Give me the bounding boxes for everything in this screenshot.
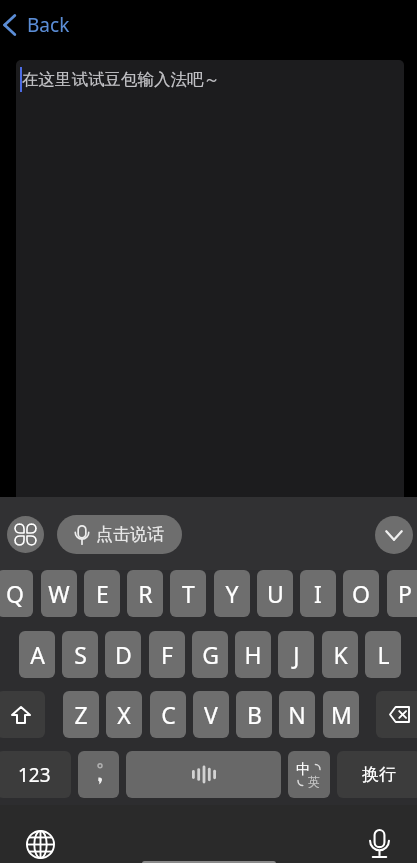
button[interactable]: P <box>387 570 417 617</box>
staticText: O <box>352 578 370 609</box>
button[interactable]: F <box>149 631 185 678</box>
button[interactable]: 在这里试试豆包输入法吧～ <box>16 60 404 497</box>
button[interactable]: G <box>192 631 228 678</box>
button[interactable]: I <box>300 570 336 617</box>
staticText: P <box>398 578 412 609</box>
button[interactable]: H <box>235 631 271 678</box>
button[interactable]: Y <box>214 570 250 617</box>
staticText: T <box>182 578 195 609</box>
button[interactable]: J <box>278 631 314 678</box>
staticText: A <box>30 639 45 670</box>
button[interactable]: 点击说话 <box>57 515 182 554</box>
button[interactable]: Comma <box>78 751 119 798</box>
staticText: C <box>161 699 176 730</box>
staticText: S <box>74 639 87 670</box>
staticText: W <box>48 578 70 609</box>
button[interactable]: S <box>62 631 98 678</box>
button[interactable]: Back <box>2 11 70 39</box>
button[interactable]: X <box>106 691 142 738</box>
staticText: M <box>331 699 352 730</box>
staticText: H <box>244 639 262 670</box>
staticText: 英 <box>308 774 320 789</box>
button[interactable]: L <box>365 631 401 678</box>
button[interactable]: Space <box>126 751 281 798</box>
staticText: V <box>204 699 218 730</box>
button[interactable]: Backspace <box>376 691 417 738</box>
button[interactable]: Keyboard panels <box>7 516 44 553</box>
button[interactable]: V <box>193 691 229 738</box>
staticText: D <box>115 639 132 670</box>
button[interactable]: N <box>279 691 315 738</box>
button[interactable]: D <box>105 631 141 678</box>
button[interactable]: Shift <box>0 691 45 738</box>
button[interactable]: Z <box>63 691 99 738</box>
staticText: F <box>161 639 173 670</box>
staticText: 在这里试试豆包输入法吧～ <box>22 69 220 90</box>
staticText: B <box>247 699 262 730</box>
button[interactable]: Hide keyboard <box>375 516 413 554</box>
staticText: 123 <box>18 762 51 788</box>
staticText: 中 <box>296 761 310 779</box>
button[interactable]: Switch language <box>20 824 61 863</box>
button[interactable]: O <box>343 570 379 617</box>
staticText: U <box>267 578 284 609</box>
button[interactable]: C <box>150 691 186 738</box>
staticText: J <box>293 639 300 670</box>
button[interactable]: W <box>41 570 77 617</box>
button[interactable]: B <box>236 691 272 738</box>
staticText: R <box>138 578 153 609</box>
staticText: Q <box>6 578 24 609</box>
staticText: Y <box>225 578 239 609</box>
staticText: N <box>288 699 306 730</box>
button[interactable]: 123 <box>0 751 71 798</box>
staticText: L <box>377 639 390 670</box>
button[interactable]: Chinese English toggle <box>288 751 330 798</box>
button[interactable]: E <box>84 570 120 617</box>
button[interactable]: T <box>170 570 206 617</box>
staticText: X <box>117 699 131 730</box>
button[interactable]: R <box>127 570 163 617</box>
staticText: 点击说话 <box>96 524 164 545</box>
button[interactable]: A <box>19 631 55 678</box>
button[interactable]: Q <box>0 570 33 617</box>
staticText: Back <box>27 12 70 38</box>
staticText: E <box>96 578 109 609</box>
button[interactable]: U <box>257 570 293 617</box>
staticText: K <box>333 639 348 670</box>
staticText: I <box>314 578 322 609</box>
button[interactable]: K <box>322 631 358 678</box>
button[interactable]: 换行 <box>337 751 417 798</box>
button[interactable]: M <box>323 691 359 738</box>
staticText: G <box>202 639 219 670</box>
staticText: Z <box>74 699 88 730</box>
button[interactable]: Voice input <box>359 823 400 863</box>
staticText: 换行 <box>362 764 396 785</box>
